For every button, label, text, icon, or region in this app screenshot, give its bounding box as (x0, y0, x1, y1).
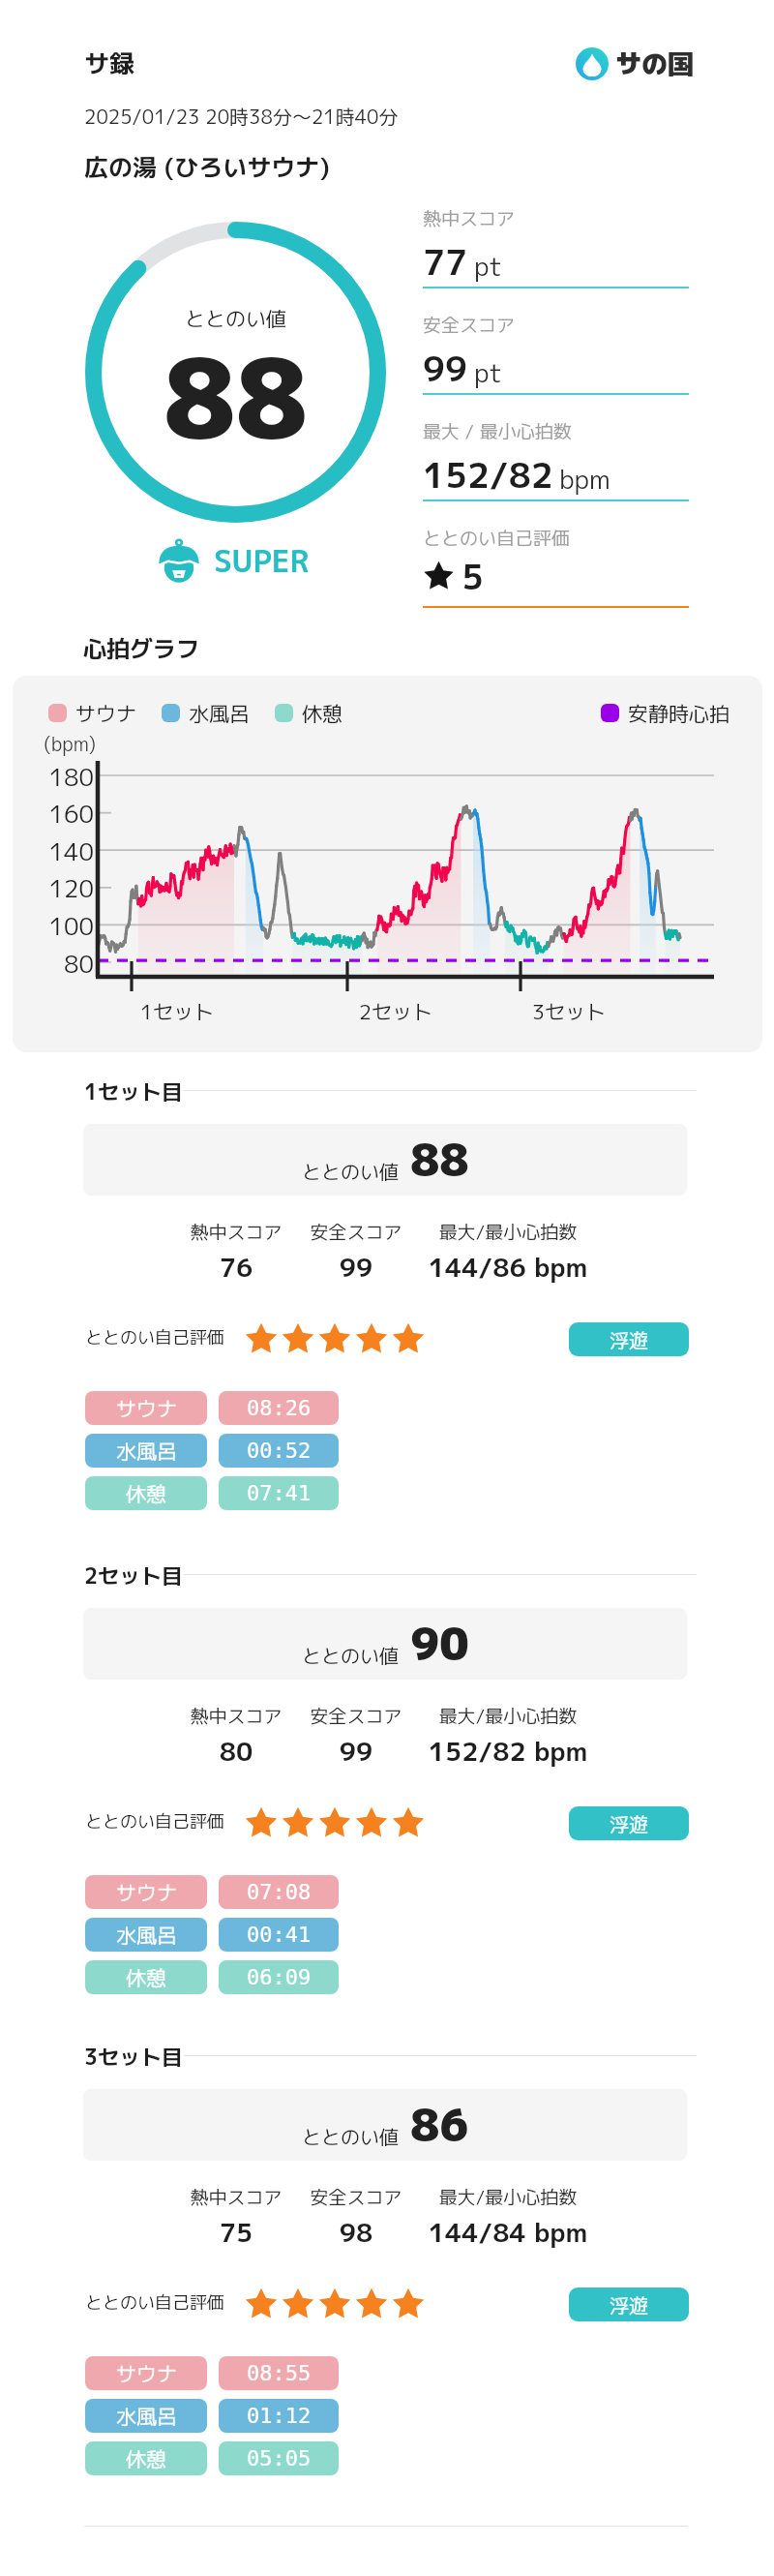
staticText: 浮遊 (610, 2291, 648, 2318)
staticText: 水風呂 (189, 699, 250, 727)
staticText: ととのい値 (302, 2123, 399, 2150)
staticText: 86 (410, 2094, 469, 2156)
button[interactable]: 00:41 (219, 1918, 339, 1952)
staticText: 休憩 (126, 1479, 166, 1507)
button[interactable]: 01:12 (219, 2399, 339, 2433)
staticText: 98 (230, 2214, 482, 2251)
staticText: 最大/最小心拍数 (382, 1220, 634, 1246)
staticText: pt (474, 354, 503, 391)
staticText: サウナ (116, 1878, 177, 1906)
button[interactable]: 水風呂 (85, 2399, 207, 2433)
staticText: 99 (230, 1733, 482, 1770)
staticText: 88 (410, 1129, 469, 1191)
staticText: ととのい自己評価 (85, 1809, 224, 1834)
staticText: サウナ (116, 2359, 177, 2387)
staticText: SUPER (214, 540, 310, 582)
staticText: 90 (410, 1613, 469, 1675)
staticText: 2セット目 (84, 1561, 184, 1591)
button[interactable]: 浮遊 (569, 1806, 689, 1840)
staticText: 熱中スコア (110, 2185, 362, 2211)
staticText: 120 (40, 871, 94, 905)
staticText: 99 (230, 1249, 482, 1286)
staticText: 広の湯 (ひろいサウナ) (84, 150, 330, 184)
staticText: 80 (110, 1733, 362, 1770)
staticText: 浮遊 (610, 1326, 648, 1353)
button[interactable]: 浮遊 (569, 1322, 689, 1356)
staticText: 152/82 bpm (382, 1733, 634, 1770)
staticText: 最大/最小心拍数 (382, 2185, 634, 2211)
staticText: 88 (85, 321, 386, 474)
staticText: 安全スコア (230, 1220, 482, 1246)
staticText: 熱中スコア (110, 1220, 362, 1246)
staticText: 3セット (521, 997, 617, 1025)
button[interactable]: 休憩 (85, 2441, 207, 2475)
staticText: 水風呂 (116, 2402, 177, 2430)
staticText: pt (474, 248, 503, 285)
button[interactable]: 休憩 (85, 1960, 207, 1994)
staticText: 休憩 (302, 699, 342, 727)
staticText: 休憩 (126, 1963, 166, 1991)
button[interactable]: サの国 logo (576, 45, 694, 82)
staticText: bpm (559, 461, 610, 498)
button[interactable]: 水風呂 (85, 1918, 207, 1952)
staticText: 144/86 bpm (382, 1249, 634, 1286)
staticText: ととのい値 (85, 304, 386, 332)
button[interactable]: 07:41 (219, 1476, 339, 1510)
staticText: 06:09 (247, 1965, 312, 1990)
staticText: 00:41 (247, 1923, 312, 1948)
staticText: 140 (40, 834, 94, 868)
staticText: 熱中スコア (110, 1704, 362, 1730)
button[interactable]: SUPER (158, 538, 310, 583)
staticText: ととのい自己評価 (423, 526, 571, 552)
staticText: 152/82 (423, 450, 553, 499)
staticText: 水風呂 (116, 1437, 177, 1465)
button[interactable]: 08:55 (219, 2356, 339, 2390)
button[interactable]: 06:09 (219, 1960, 339, 1994)
staticText: 07:41 (247, 1481, 312, 1506)
staticText: ととのい値 (302, 1642, 399, 1669)
button[interactable]: 浮遊 (569, 2288, 689, 2321)
staticText: ととのい値 (302, 1158, 399, 1185)
staticText: サ録 (84, 45, 135, 80)
staticText: 2025/01/23 20時38分〜21時40分 (84, 103, 399, 130)
staticText: サウナ (116, 1394, 177, 1422)
button[interactable]: 休憩 (85, 1476, 207, 1510)
staticText: 99 (423, 344, 468, 392)
staticText: 07:08 (247, 1880, 312, 1905)
button[interactable]: 00:52 (219, 1434, 339, 1468)
staticText: 休憩 (126, 2444, 166, 2472)
staticText: 80 (40, 947, 94, 981)
staticText: 熱中スコア (423, 206, 516, 232)
staticText: 安全スコア (230, 2185, 482, 2211)
staticText: 水風呂 (116, 1921, 177, 1949)
staticText: 3セット目 (84, 2042, 184, 2072)
button[interactable]: 水風呂 (85, 1434, 207, 1468)
button[interactable]: サウナ (85, 2356, 207, 2390)
staticText: 安静時心拍 (628, 699, 729, 727)
staticText: 76 (110, 1249, 362, 1286)
staticText: 1セット目 (84, 1076, 184, 1106)
staticText: 180 (40, 760, 94, 794)
staticText: 160 (40, 797, 94, 831)
staticText: 08:55 (247, 2361, 312, 2386)
staticText: 75 (110, 2214, 362, 2251)
staticText: 心拍グラフ (83, 632, 199, 664)
staticText: (bpm) (44, 730, 97, 757)
staticText: 浮遊 (610, 1810, 648, 1837)
staticText: 00:52 (247, 1439, 312, 1464)
button[interactable]: 07:08 (219, 1875, 339, 1909)
staticText: 最大 / 最小心拍数 (423, 419, 572, 445)
button[interactable]: サウナ (85, 1875, 207, 1909)
staticText: 144/84 bpm (382, 2214, 634, 2251)
staticText: 安全スコア (423, 313, 516, 339)
button[interactable]: 08:26 (219, 1391, 339, 1425)
button[interactable]: サウナ (85, 1391, 207, 1425)
staticText: サウナ (75, 699, 136, 727)
staticText: 2セット (347, 997, 444, 1025)
staticText: 01:12 (247, 2404, 312, 2429)
staticText: サの国 (615, 45, 694, 82)
staticText: ととのい自己評価 (85, 1325, 224, 1349)
staticText: 05:05 (247, 2446, 312, 2471)
button[interactable]: 05:05 (219, 2441, 339, 2475)
staticText: 安全スコア (230, 1704, 482, 1730)
